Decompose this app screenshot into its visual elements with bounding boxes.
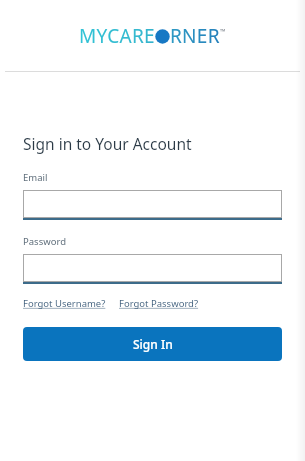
staticText: Sign In <box>133 336 173 352</box>
button[interactable] <box>23 254 282 284</box>
button[interactable]: Sign In <box>23 327 282 361</box>
staticText: Forgot Password? <box>119 297 199 310</box>
staticText: Email <box>23 171 48 184</box>
staticText: MYCARE <box>79 23 155 49</box>
button[interactable]: Forgot Username? <box>23 297 106 310</box>
staticText: ™ <box>220 27 226 37</box>
staticText: Sign in to Your Account <box>23 133 192 154</box>
staticText: Forgot Username? <box>23 297 106 310</box>
button[interactable]: Forgot Password? <box>119 297 199 310</box>
button[interactable] <box>23 190 282 220</box>
staticText: Password <box>23 235 66 248</box>
staticText: RNER <box>170 23 220 49</box>
